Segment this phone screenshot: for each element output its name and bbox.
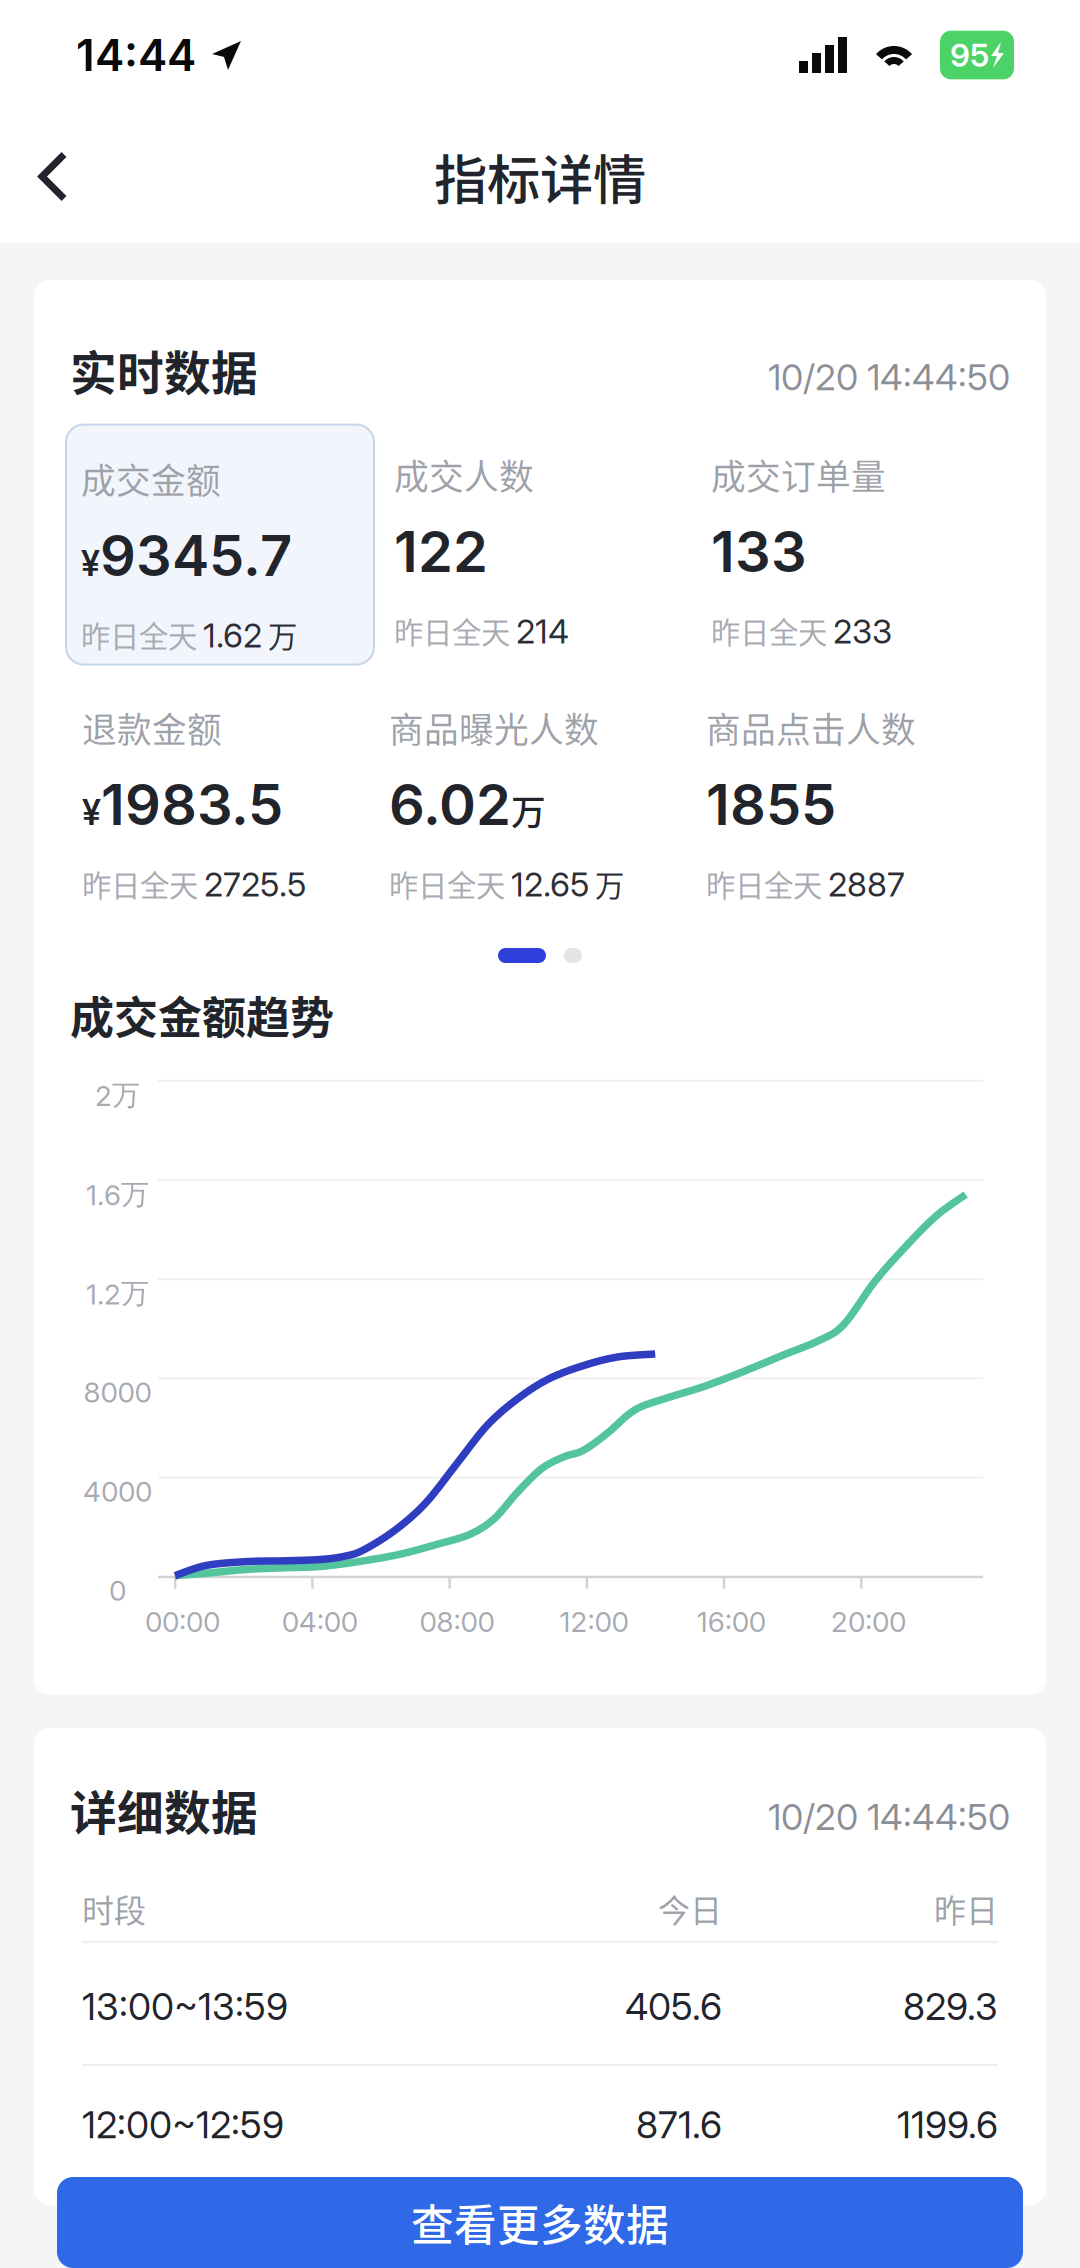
staticText: 万 [595,862,624,905]
staticText: 昨日 [934,1885,998,1932]
button[interactable]: 查看更多数据 [57,2177,1023,2268]
staticText: 12:00 [560,1605,629,1639]
staticText: 详细数据 [70,1776,258,1843]
staticText: 233 [833,611,892,652]
staticText: 10/20 14:44:50 [768,355,1010,399]
staticText: 成交金额趋势 [70,983,334,1047]
staticText: 万 [268,613,297,656]
staticText: 0 [109,1574,126,1608]
staticText: 成交金额 [81,454,221,504]
staticText: 6.02 [389,771,511,839]
staticText: 10/20 14:44:50 [768,1795,1010,1839]
staticText: ¥ [82,791,101,833]
staticText: 20:00 [831,1605,906,1639]
staticText: 昨日全天 [81,613,197,656]
staticText: 1855 [706,771,836,839]
staticText: 昨日全天 [389,862,505,905]
staticText: 214 [516,611,569,652]
staticText: 成交订单量 [711,450,886,500]
staticText: 1.62 [203,615,262,656]
staticText: 16:00 [697,1605,766,1639]
staticText: 万 [511,785,546,835]
staticText: 指标详情 [434,138,646,215]
staticText: 商品点击人数 [706,703,916,753]
staticText: 95 [950,36,989,74]
staticText: 1199.6 [897,2102,998,2147]
staticText: 时段 [82,1885,146,1932]
staticText: 2887 [828,864,905,905]
staticText: 12.65 [511,864,589,905]
staticText: 04:00 [282,1605,358,1639]
staticText: 829.3 [903,1984,998,2029]
staticText: 8000 [83,1375,151,1409]
staticText: 14:44 [76,28,196,82]
staticText: 12:00~12:59 [82,2102,284,2147]
staticText: 871.6 [636,2102,722,2147]
staticText: 成交人数 [394,450,534,500]
staticText: 1983.5 [101,771,283,839]
staticText: 122 [394,518,488,586]
staticText: 1.2万 [86,1276,149,1311]
staticText: 4000 [83,1474,152,1508]
staticText: 405.6 [625,1984,722,2029]
staticText: 昨日全天 [711,609,827,652]
staticText: 2万 [95,1078,140,1113]
staticText: 08:00 [419,1605,494,1639]
staticText: 今日 [658,1885,722,1932]
staticText: 查看更多数据 [411,2192,669,2253]
staticText: 13:00~13:59 [82,1984,288,2029]
staticText: 昨日全天 [394,609,510,652]
staticText: 9345.7 [100,522,292,590]
staticText: 昨日全天 [706,862,822,905]
staticText: 商品曝光人数 [389,703,599,753]
staticText: 退款金额 [82,703,222,753]
staticText: ¥ [81,542,100,584]
staticText: 实时数据 [70,336,258,404]
staticText: 1.6万 [86,1177,149,1212]
staticText: 2725.5 [204,864,306,905]
staticText: 00:00 [145,1605,220,1639]
button[interactable]: Back [28,132,78,220]
staticText: 昨日全天 [82,862,198,905]
staticText: 133 [711,518,807,586]
